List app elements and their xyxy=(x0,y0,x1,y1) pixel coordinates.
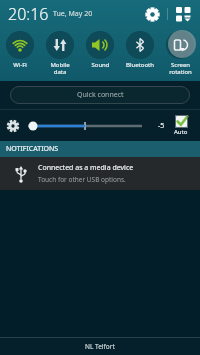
button[interactable]: Wi-Fi xyxy=(0,31,40,81)
staticText: NOTIFICATIONS xyxy=(6,144,59,154)
button[interactable]: Screen rotation xyxy=(160,31,200,81)
button[interactable]: Sound xyxy=(80,31,120,81)
button[interactable]: Quick connect xyxy=(10,86,190,104)
button[interactable]: Bluetooth xyxy=(120,31,160,81)
button[interactable]: Connected as a media device xyxy=(0,157,200,190)
staticText: Screen rotation xyxy=(169,61,192,76)
staticText: 20:16 xyxy=(8,3,49,25)
staticText: Connected as a media device xyxy=(38,163,134,173)
staticText: NL Telfort xyxy=(85,342,115,351)
button[interactable]: Auto xyxy=(174,115,188,136)
staticText: Tue, May 20 xyxy=(53,9,93,19)
staticText: Auto xyxy=(174,128,188,136)
staticText: -5 xyxy=(158,121,165,131)
staticText: Sound xyxy=(91,61,110,69)
button[interactable]: Mobile data xyxy=(40,31,80,81)
staticText: Touch for other USB options. xyxy=(38,175,126,184)
staticText: Wi-Fi xyxy=(13,61,27,69)
staticText: Quick connect xyxy=(77,90,124,100)
staticText: Bluetooth xyxy=(126,61,154,69)
staticText: Mobile data xyxy=(50,61,70,76)
button[interactable] xyxy=(172,3,194,25)
button[interactable] xyxy=(141,3,163,25)
button[interactable] xyxy=(24,118,146,134)
